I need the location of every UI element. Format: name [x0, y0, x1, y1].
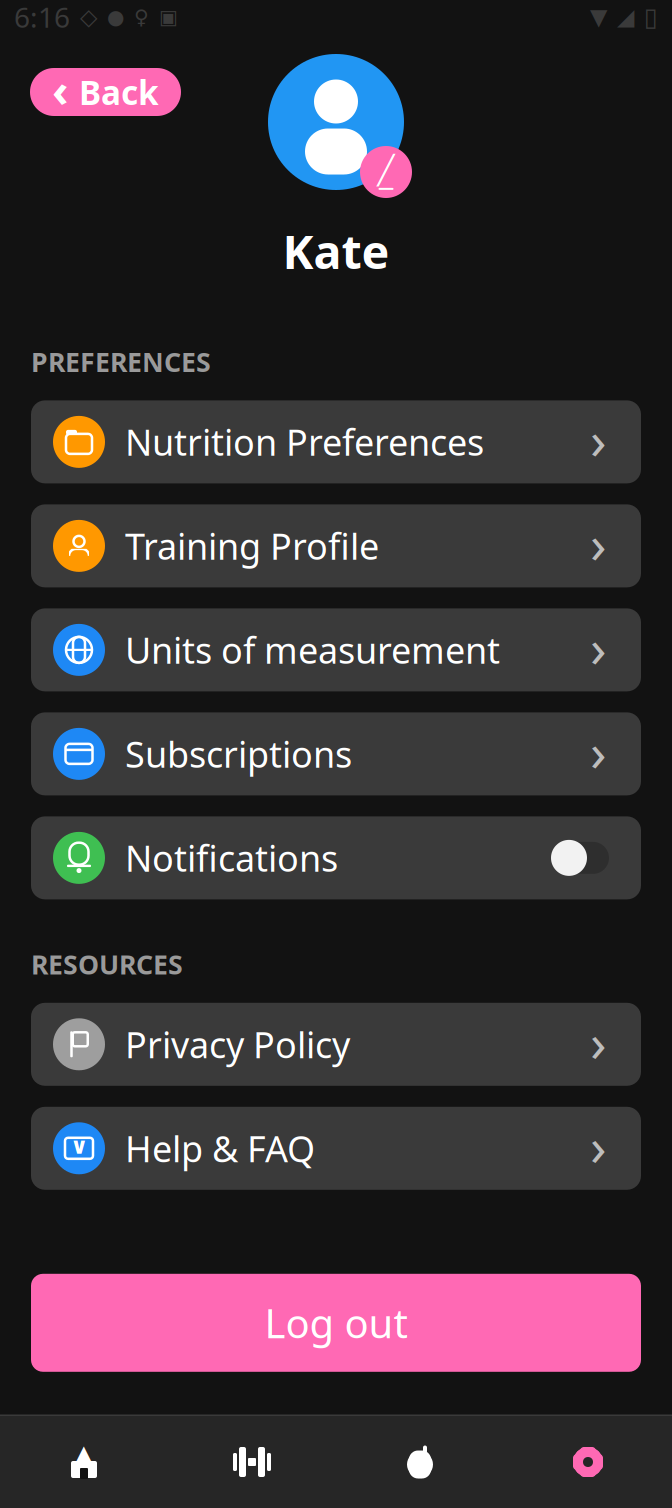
staticText: Units of measurement — [125, 626, 500, 674]
button[interactable]: ∨ — [31, 1107, 641, 1190]
button[interactable]: Log out — [31, 1274, 641, 1372]
staticText: › — [590, 1110, 607, 1181]
button[interactable]: Nutrition — [336, 1416, 504, 1508]
staticText: ● — [107, 6, 124, 28]
button[interactable]: Subscriptions — [31, 712, 641, 795]
staticText: ◢ — [617, 4, 634, 30]
button[interactable]: Units of measurement — [31, 608, 641, 691]
button[interactable]: Home — [0, 1416, 168, 1508]
staticText: ▼ — [590, 4, 607, 30]
staticText: › — [590, 715, 607, 786]
button[interactable]: Settings — [504, 1416, 672, 1508]
staticText: Subscriptions — [125, 730, 352, 778]
staticText: › — [590, 507, 607, 578]
staticText: RESOURCES — [31, 946, 183, 982]
staticText: Privacy Policy — [125, 1020, 350, 1068]
staticText: ◇ — [80, 4, 97, 30]
staticText: PREFERENCES — [31, 344, 211, 379]
button[interactable]: ‹ — [30, 68, 181, 116]
button[interactable]: Privacy Policy — [31, 1003, 641, 1086]
button[interactable]: Workouts — [168, 1416, 336, 1508]
staticText: ▣ — [159, 6, 178, 28]
staticText: › — [590, 1006, 607, 1077]
staticText: ‹ — [52, 59, 69, 120]
staticText: › — [590, 611, 607, 682]
staticText: Help & FAQ — [125, 1124, 315, 1172]
staticText: Notifications — [125, 834, 338, 882]
staticText: ∨ — [70, 1133, 88, 1159]
staticText: 6:16 — [14, 0, 70, 36]
staticText: ▲ — [72, 1438, 95, 1472]
button[interactable]: Nutrition Preferences — [31, 400, 641, 483]
staticText: ╱ — [377, 154, 394, 186]
staticText: › — [590, 403, 607, 474]
staticText: Kate — [282, 220, 389, 282]
staticText: Log out — [264, 1296, 407, 1349]
staticText: Training Profile — [125, 522, 379, 570]
staticText: Back — [79, 70, 159, 114]
button[interactable]: Notifications — [31, 816, 641, 899]
staticText: ♀ — [134, 6, 149, 28]
button[interactable]: Training Profile — [31, 504, 641, 587]
staticText: Nutrition Preferences — [125, 418, 484, 466]
staticText: ▯ — [644, 3, 658, 31]
